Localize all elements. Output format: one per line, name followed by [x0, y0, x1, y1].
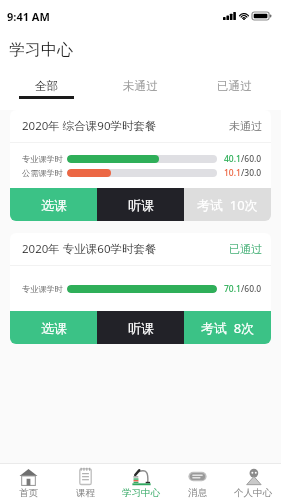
other: 消息 [188, 467, 207, 486]
staticText: 专业课学时 [22, 284, 63, 294]
staticText: 学习中心 [122, 487, 160, 499]
staticText: 2020年 综合课90学时套餐 [22, 118, 157, 134]
button[interactable]: 未通过 [93, 68, 187, 110]
button[interactable]: 学习中心 [113, 464, 169, 500]
button[interactable]: 已通过 [187, 68, 281, 110]
other: 课程 [76, 467, 95, 486]
staticText: 消息 [188, 487, 207, 499]
staticText: 全部 [35, 79, 59, 94]
staticText: 听课 [128, 320, 154, 336]
staticText: /60.0 [241, 283, 262, 295]
staticText: 专业课学时 [22, 154, 63, 164]
button[interactable]: 全部 [0, 68, 93, 110]
button[interactable]: 考试 10次 [184, 188, 271, 221]
staticText: 40.1 [224, 153, 241, 165]
staticText: 公需课学时 [22, 168, 63, 178]
other: 学习中心 [132, 467, 151, 486]
staticText: 选课 [41, 197, 67, 213]
staticText: 未通过 [229, 119, 262, 133]
button[interactable]: 听课 [97, 188, 184, 221]
staticText: 未通过 [123, 79, 158, 94]
staticText: 2020年 专业课60学时套餐 [22, 241, 157, 257]
button[interactable]: 听课 [97, 311, 184, 344]
staticText: 考试 8次 [201, 319, 255, 337]
staticText: /60.0 [241, 153, 262, 165]
staticText: 已通过 [217, 79, 252, 94]
button[interactable]: 选课 [10, 188, 97, 221]
other: 个人中心 [244, 467, 263, 486]
staticText: 学习中心 [9, 40, 73, 60]
staticText: 个人中心 [234, 487, 272, 499]
staticText: 70.1 [224, 283, 241, 295]
staticText: /30.0 [241, 167, 262, 179]
staticText: 已通过 [229, 242, 262, 256]
staticText: 9:41 AM [7, 9, 50, 24]
staticText: 10.1 [224, 167, 241, 179]
other: 首页 [19, 467, 38, 486]
button[interactable]: 首页 [0, 464, 57, 500]
button[interactable]: 考试 8次 [184, 311, 271, 344]
staticText: 课程 [76, 487, 95, 499]
staticText: 选课 [41, 320, 67, 336]
staticText: 首页 [19, 487, 38, 499]
staticText: 考试 10次 [197, 196, 258, 214]
staticText: 听课 [128, 197, 154, 213]
button[interactable]: 选课 [10, 311, 97, 344]
button[interactable]: 消息 [169, 464, 225, 500]
button[interactable]: 个人中心 [225, 464, 281, 500]
button[interactable]: 课程 [57, 464, 113, 500]
